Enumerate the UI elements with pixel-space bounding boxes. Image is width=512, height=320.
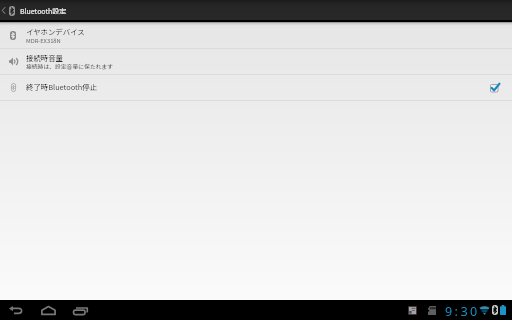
staticText: Bluetooth設定	[20, 6, 67, 16]
button[interactable]: Status bar	[404, 300, 510, 320]
button[interactable]: Navigate up	[0, 0, 18, 20]
button[interactable]: 接続時音量	[0, 49, 512, 74]
button[interactable]: 終了時Bluetooth停止	[0, 75, 512, 100]
staticText: 終了時Bluetooth停止	[26, 81, 98, 92]
staticText: 接続時音量	[26, 52, 63, 63]
staticText: 9:30	[445, 303, 480, 320]
staticText: MDR-EX318N	[26, 36, 61, 44]
button[interactable]: Back	[4, 300, 28, 320]
staticText: 接続時は、設定音量に保たれます	[26, 62, 113, 70]
button[interactable]: Home	[36, 300, 60, 320]
button[interactable]: イヤホンデバイス	[0, 22, 512, 48]
staticText: イヤホンデバイス	[26, 26, 85, 37]
button[interactable]: Recent apps	[68, 300, 92, 320]
